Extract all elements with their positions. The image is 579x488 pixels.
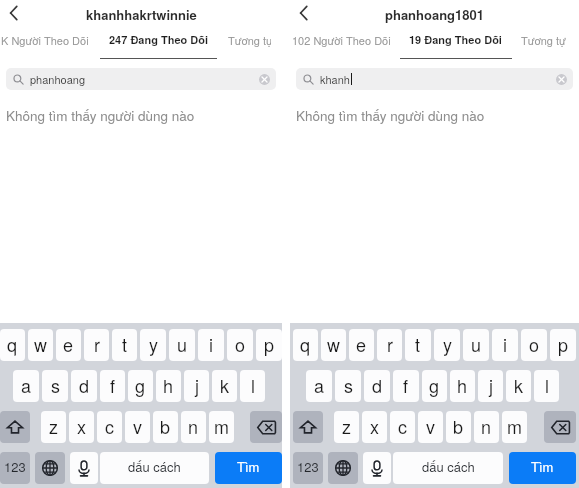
button[interactable]: z	[41, 411, 66, 443]
button[interactable]: k	[506, 370, 531, 402]
button[interactable]: g	[128, 370, 153, 402]
button[interactable]: c	[390, 411, 415, 443]
button[interactable]: Back	[291, 2, 315, 26]
button[interactable]: j	[478, 370, 503, 402]
button[interactable]: p	[256, 329, 282, 361]
button[interactable]: i	[492, 329, 518, 361]
button[interactable]: y	[140, 329, 166, 361]
button[interactable]: s	[335, 370, 361, 402]
staticText: b	[453, 413, 464, 439]
staticText: j	[489, 372, 493, 398]
button[interactable]: q	[293, 329, 318, 361]
staticText: v	[426, 413, 435, 439]
button[interactable]: a	[13, 370, 39, 402]
staticText: n	[481, 413, 492, 439]
button[interactable]: u	[169, 329, 195, 361]
button[interactable]: Switch keyboard	[328, 452, 358, 484]
staticText: Không tìm thấy người dùng nào	[296, 106, 485, 125]
staticText: t	[415, 331, 421, 357]
button[interactable]: Backspace	[250, 411, 282, 443]
button[interactable]: o	[227, 329, 253, 361]
button[interactable]: n	[474, 411, 499, 443]
button[interactable]: w	[321, 329, 346, 361]
button[interactable]: 123	[293, 452, 323, 484]
staticText: s	[51, 372, 60, 398]
button[interactable]: i	[198, 329, 224, 361]
button[interactable]: v	[125, 411, 150, 443]
button[interactable]: K Người Theo Dõi	[0, 26, 90, 53]
button[interactable]: phanhoang	[6, 68, 276, 90]
staticText: Tìm	[237, 457, 260, 476]
button[interactable]: k	[212, 370, 237, 402]
staticText: Tương tự	[228, 32, 271, 48]
button[interactable]: Tương tự	[228, 26, 282, 53]
button[interactable]: q	[0, 329, 25, 361]
button[interactable]: Clear text	[258, 73, 271, 86]
button[interactable]: n	[181, 411, 206, 443]
button[interactable]: c	[97, 411, 122, 443]
button[interactable]: b	[153, 411, 178, 443]
staticText: q	[300, 331, 311, 357]
button[interactable]: t	[405, 329, 431, 361]
button[interactable]: dấu cách	[393, 452, 503, 484]
button[interactable]: a	[306, 370, 332, 402]
button[interactable]: Voice input	[363, 452, 391, 484]
staticText: q	[7, 331, 18, 357]
button[interactable]: r	[377, 329, 402, 361]
button[interactable]: b	[446, 411, 471, 443]
button[interactable]: Shift	[0, 411, 30, 443]
staticText: h	[457, 372, 468, 398]
button[interactable]: w	[28, 329, 53, 361]
staticText: o	[235, 331, 246, 357]
staticText: c	[105, 413, 114, 439]
button[interactable]: p	[550, 329, 576, 361]
button[interactable]: Backspace	[544, 411, 576, 443]
button[interactable]: d	[71, 370, 97, 402]
button[interactable]: l	[240, 370, 265, 402]
button[interactable]: v	[418, 411, 443, 443]
button[interactable]: Tìm	[509, 452, 576, 484]
button[interactable]: m	[502, 411, 527, 443]
staticText: r	[387, 331, 393, 357]
button[interactable]: dấu cách	[100, 452, 209, 484]
staticText: g	[135, 372, 146, 398]
button[interactable]: y	[434, 329, 460, 361]
button[interactable]: u	[463, 329, 489, 361]
button[interactable]: h	[156, 370, 181, 402]
button[interactable]: 123	[0, 452, 30, 484]
button[interactable]: j	[184, 370, 209, 402]
button[interactable]: Shift	[293, 411, 323, 443]
button[interactable]: f	[393, 370, 419, 402]
button[interactable]: 19 Đang Theo Dõi	[393, 26, 517, 53]
button[interactable]: t	[112, 329, 137, 361]
button[interactable]: l	[534, 370, 559, 402]
button[interactable]: z	[334, 411, 359, 443]
button[interactable]: x	[69, 411, 94, 443]
button[interactable]: 102 Người Theo Dõi	[290, 26, 393, 53]
button[interactable]: Tìm	[215, 452, 282, 484]
button[interactable]: 247 Đang Theo Dõi	[90, 26, 228, 53]
button[interactable]: g	[422, 370, 447, 402]
button[interactable]: f	[100, 370, 125, 402]
button[interactable]: r	[84, 329, 109, 361]
button[interactable]: e	[349, 329, 374, 361]
button[interactable]: Voice input	[70, 452, 98, 484]
button[interactable]: Switch keyboard	[35, 452, 65, 484]
button[interactable]: e	[56, 329, 81, 361]
staticText: l	[545, 372, 549, 398]
button[interactable]: khanh	[296, 68, 573, 90]
button[interactable]: h	[450, 370, 475, 402]
staticText: y	[149, 331, 158, 357]
staticText: s	[344, 372, 353, 398]
staticText: 247 Đang Theo Dõi	[109, 32, 209, 48]
staticText: c	[398, 413, 407, 439]
button[interactable]: Clear text	[555, 73, 568, 86]
button[interactable]: Tương tự	[517, 26, 579, 53]
button[interactable]: d	[364, 370, 390, 402]
button[interactable]: s	[42, 370, 68, 402]
button[interactable]: o	[521, 329, 547, 361]
button[interactable]: m	[209, 411, 234, 443]
button[interactable]: x	[362, 411, 387, 443]
staticText: h	[163, 372, 174, 398]
button[interactable]: Back	[1, 2, 25, 26]
